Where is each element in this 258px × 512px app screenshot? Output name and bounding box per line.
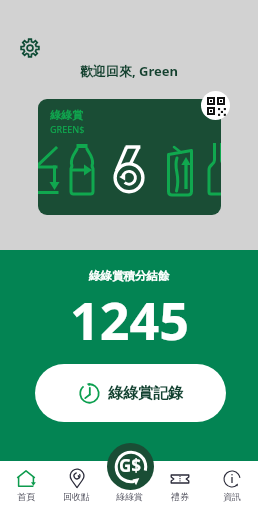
staticText: 1245 (70, 284, 189, 355)
button[interactable]: 綠綠賞記錄 (35, 364, 226, 422)
staticText: 資訊 (223, 491, 241, 502)
staticText: 回收點 (63, 491, 90, 502)
staticText: 禮券 (171, 491, 189, 502)
button[interactable]: 回收點 (51, 461, 102, 512)
staticText: 綠綠賞記錄 (108, 384, 183, 403)
staticText: 綠綠賞 (50, 108, 83, 122)
staticText: G$ (119, 454, 142, 477)
button[interactable]: 首頁 (0, 461, 51, 512)
staticText: 首頁 (17, 491, 35, 502)
staticText: 歡迎回來, Green (80, 62, 179, 80)
button[interactable]: Green dollars (107, 443, 154, 490)
staticText: GREEN$ (50, 123, 85, 135)
button[interactable]: 禮券 (154, 461, 206, 512)
button[interactable]: 資訊 (206, 461, 258, 512)
button[interactable]: Settings (17, 35, 43, 61)
staticText: 綠綠賞 (116, 491, 143, 502)
button[interactable]: Scan QR code (201, 91, 230, 120)
staticText: 綠綠賞積分結餘 (89, 269, 170, 283)
button[interactable]: 綠綠賞 (38, 99, 221, 215)
